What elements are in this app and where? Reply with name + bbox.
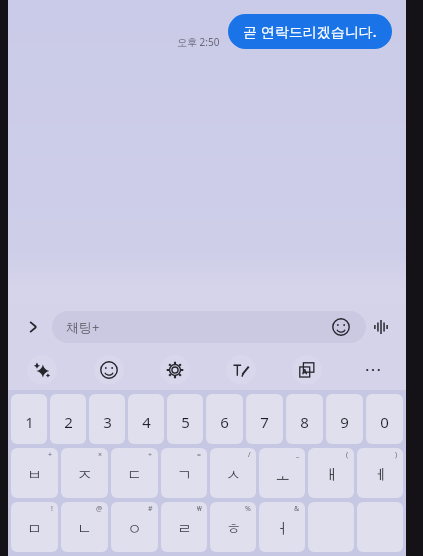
staticText: 5 xyxy=(181,412,190,432)
staticText: 4 xyxy=(142,412,151,432)
button[interactable]: _ xyxy=(259,448,305,498)
button[interactable]: / xyxy=(210,448,256,498)
button[interactable]: Emoji xyxy=(330,316,352,338)
button[interactable]: Voice message xyxy=(366,312,396,342)
staticText: 채팅+ xyxy=(66,318,100,336)
button[interactable]: @ xyxy=(61,502,108,552)
button[interactable]: = xyxy=(161,448,207,498)
button[interactable]: 0 xyxy=(366,394,403,444)
staticText: ㄱ xyxy=(177,466,192,485)
staticText: ) xyxy=(395,450,398,460)
staticText: ㅎ xyxy=(226,520,241,539)
staticText: ㅂ xyxy=(27,466,42,485)
staticText: + xyxy=(48,450,53,460)
staticText: 2 xyxy=(64,412,73,432)
button[interactable]: 8 xyxy=(286,394,323,444)
button[interactable]: & xyxy=(259,502,305,552)
button[interactable]: AI suggestions xyxy=(8,350,75,390)
button[interactable]: Translate xyxy=(274,350,340,390)
button[interactable]: ( xyxy=(308,448,354,498)
staticText: ㅇ xyxy=(127,520,142,539)
button[interactable]: Expand xyxy=(18,312,48,342)
staticText: 8 xyxy=(300,412,309,432)
button[interactable]: ! xyxy=(11,502,58,552)
button[interactable]: 1 xyxy=(11,394,47,444)
staticText: & xyxy=(294,504,300,514)
staticText: 3 xyxy=(103,412,112,432)
staticText: 7 xyxy=(260,412,269,432)
button[interactable]: + xyxy=(11,448,58,498)
button[interactable]: Emoji xyxy=(75,350,142,390)
staticText: ㅔ xyxy=(373,466,388,485)
button[interactable]: 9 xyxy=(326,394,363,444)
staticText: ( xyxy=(346,450,349,460)
staticText: # xyxy=(148,504,153,514)
staticText: ₩ xyxy=(197,504,202,514)
button[interactable]: 5 xyxy=(167,394,203,444)
staticText: 6 xyxy=(220,412,229,432)
button[interactable]: 채팅+ xyxy=(52,311,366,343)
staticText: ! xyxy=(51,504,53,514)
button[interactable]: ) xyxy=(357,448,403,498)
staticText: ㄷ xyxy=(127,466,142,485)
button[interactable]: Settings xyxy=(142,350,208,390)
staticText: @ xyxy=(96,504,103,514)
button[interactable]: % xyxy=(210,502,256,552)
staticText: 곧 연락드리겠습니다. xyxy=(243,22,377,41)
button[interactable]: 4 xyxy=(128,394,164,444)
staticText: ㅐ xyxy=(324,466,339,485)
button[interactable]: 곧 연락드리겠습니다. xyxy=(228,14,392,49)
staticText: / xyxy=(248,450,251,460)
staticText: ㅓ xyxy=(275,520,290,539)
button[interactable]: × xyxy=(61,448,108,498)
staticText: ㅁ xyxy=(27,520,42,539)
staticText: ㄴ xyxy=(77,520,92,539)
staticText: × xyxy=(98,450,103,460)
staticText: ㄹ xyxy=(177,520,192,539)
staticText: = xyxy=(197,450,202,460)
staticText: ÷ xyxy=(148,450,153,460)
button[interactable]: More options xyxy=(340,350,406,390)
staticText: _ xyxy=(296,450,300,460)
staticText: 9 xyxy=(340,412,349,432)
staticText: 오후 2:50 xyxy=(177,35,220,49)
staticText: % xyxy=(245,504,251,514)
button[interactable]: Text style xyxy=(208,350,274,390)
button[interactable]: 6 xyxy=(206,394,243,444)
staticText: 0 xyxy=(380,412,389,432)
staticText: ㅗ xyxy=(275,466,290,485)
button[interactable]: ÷ xyxy=(111,448,158,498)
staticText: ㅅ xyxy=(226,466,241,485)
staticText: ㅈ xyxy=(77,466,92,485)
button[interactable]: # xyxy=(111,502,158,552)
button[interactable]: 3 xyxy=(89,394,125,444)
button[interactable]: ₩ xyxy=(161,502,207,552)
button[interactable]: 7 xyxy=(246,394,283,444)
button[interactable]: 2 xyxy=(50,394,86,444)
staticText: 1 xyxy=(25,412,34,432)
